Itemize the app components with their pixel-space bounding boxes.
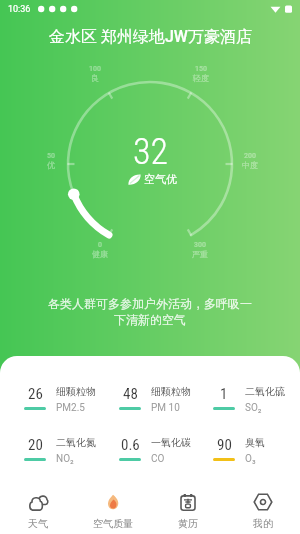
staticText: 中度 (242, 160, 258, 170)
staticText: 我的 (253, 517, 273, 530)
button[interactable]: 1 (213, 385, 300, 415)
staticText: 200 (244, 151, 256, 160)
staticText: 优 (47, 160, 55, 170)
staticText: 臭氧 (245, 436, 265, 449)
staticText: 50 (47, 151, 55, 160)
staticText: 26 (28, 385, 43, 403)
staticText: SO₂ (245, 402, 262, 414)
button[interactable]: 黄历 (150, 488, 225, 534)
button[interactable]: 天气 (0, 488, 75, 534)
staticText: 黄历 (178, 517, 198, 530)
staticText: 10:36 (8, 4, 31, 15)
staticText: 300 (194, 240, 206, 249)
button[interactable]: 48 (119, 385, 207, 415)
staticText: 0 (98, 240, 102, 249)
staticText: 32 (133, 131, 168, 173)
staticText: 金水区 郑州绿地JW万豪酒店 (49, 27, 252, 47)
staticText: 健康 (92, 249, 108, 259)
staticText: 二氧化硫 (245, 385, 285, 398)
staticText: 20 (28, 436, 43, 454)
staticText: 细颗粒物 (151, 385, 191, 398)
staticText: PM 10 (151, 402, 180, 414)
staticText: 90 (217, 436, 232, 454)
button[interactable]: 空气质量 (75, 488, 150, 534)
staticText: 严重 (192, 249, 208, 259)
staticText: NO₂ (56, 453, 74, 465)
staticText: CO (151, 453, 165, 465)
staticText: 空气质量 (93, 517, 133, 530)
staticText: 48 (123, 385, 138, 403)
button[interactable]: 20 (24, 436, 112, 466)
staticText: O₃ (245, 453, 256, 465)
staticText: 100 (89, 64, 101, 73)
button[interactable]: 我的 (225, 488, 300, 534)
staticText: 天气 (28, 517, 48, 530)
staticText: 150 (195, 64, 207, 73)
staticText: PM2.5 (56, 402, 85, 414)
staticText: 0.6 (121, 436, 140, 454)
button[interactable]: 26 (24, 385, 112, 415)
staticText: 良 (91, 73, 99, 83)
staticText: 细颗粒物 (56, 385, 96, 398)
staticText: 空气优 (144, 172, 177, 186)
button[interactable]: 0.6 (119, 436, 207, 466)
staticText: 1 (220, 385, 228, 403)
staticText: 二氧化氮 (56, 436, 96, 449)
button[interactable]: 90 (213, 436, 300, 466)
staticText: 一氧化碳 (151, 436, 191, 449)
staticText: 轻度 (193, 73, 209, 83)
staticText: 各类人群可多参加户外活动，多呼吸一下清新的空气 (48, 296, 252, 328)
